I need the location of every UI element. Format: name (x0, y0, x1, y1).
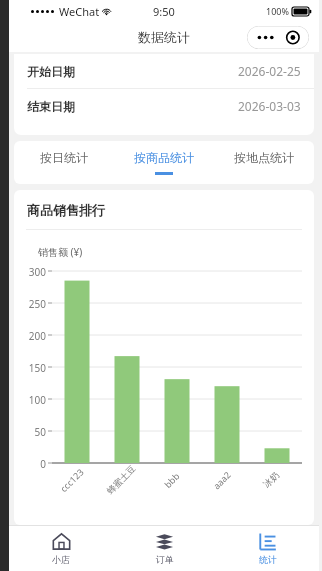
button[interactable]: 小店 (9, 526, 113, 571)
staticText: 2026-02-25 (238, 63, 301, 79)
staticText: ccc123 (57, 465, 86, 494)
button[interactable]: 结束日期 (14, 89, 314, 123)
staticText: 100% (266, 5, 289, 17)
staticText: 按商品统计 (134, 150, 194, 165)
staticText: 开始日期 (27, 64, 75, 79)
staticText: 数据统计 (138, 29, 190, 45)
staticText: 统计 (259, 554, 277, 565)
staticText: 结束日期 (27, 99, 75, 114)
staticText: WeChat (59, 4, 100, 19)
staticText: 商品销售排行 (27, 202, 105, 218)
button[interactable]: 按商品统计 (114, 141, 214, 184)
staticText: 9:50 (153, 4, 175, 19)
staticText: 订单 (156, 554, 174, 565)
button[interactable]: 订单 (113, 526, 216, 571)
staticText: 冰奶 (261, 469, 281, 490)
staticText: 2026-03-03 (238, 98, 301, 114)
staticText: bbb (161, 470, 182, 490)
button[interactable]: 开始日期 (14, 54, 314, 88)
staticText: 250 (28, 297, 46, 311)
staticText: 按日统计 (40, 150, 88, 165)
staticText: 销售额 (¥) (38, 245, 83, 259)
staticText: 200 (28, 329, 46, 343)
button[interactable]: 统计 (216, 526, 319, 571)
staticText: 100 (28, 393, 46, 407)
button[interactable]: Menu (247, 26, 309, 49)
staticText: 150 (28, 361, 46, 375)
button[interactable]: 按地点统计 (214, 141, 314, 184)
staticText: 按地点统计 (234, 150, 294, 165)
staticText: aaa2 (210, 468, 233, 492)
staticText: 300 (28, 265, 46, 279)
button[interactable]: 按日统计 (14, 141, 114, 184)
staticText: 50 (34, 425, 46, 439)
staticText: 蜂蜜土豆 (104, 463, 138, 496)
staticText: 0 (40, 457, 46, 471)
staticText: 小店 (52, 554, 70, 565)
